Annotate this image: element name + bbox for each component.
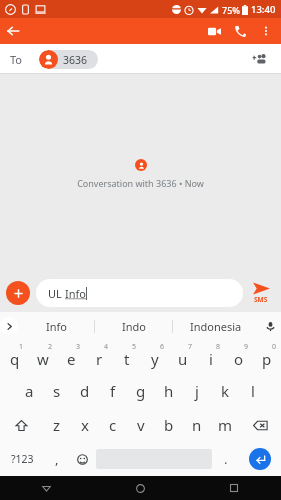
staticText: 5 (132, 342, 137, 352)
button[interactable]: g (127, 374, 155, 408)
button[interactable]: Home (93, 476, 187, 500)
button[interactable]: Indo (95, 312, 172, 340)
button[interactable]: More options (253, 18, 279, 44)
staticText: 75% (222, 4, 240, 16)
button[interactable]: v (127, 408, 155, 442)
staticText: z (53, 415, 61, 435)
button[interactable]: w (29, 340, 57, 374)
button[interactable]: Voice input (259, 314, 281, 338)
button[interactable]: d (71, 374, 99, 408)
button[interactable]: h (155, 374, 183, 408)
staticText: UL (48, 286, 65, 301)
staticText: a (25, 381, 34, 401)
button[interactable]: Add people (247, 47, 271, 71)
button[interactable]: f (99, 374, 127, 408)
staticText: 13:40 (251, 3, 276, 16)
button[interactable]: c (99, 408, 127, 442)
staticText: s (53, 381, 61, 401)
button[interactable]: 3636 (39, 50, 98, 69)
button[interactable]: a (15, 374, 43, 408)
button[interactable]: k (211, 374, 239, 408)
staticText: e (67, 349, 76, 369)
staticText: y (151, 349, 159, 369)
staticText: h (164, 381, 174, 401)
staticText: q (10, 349, 20, 369)
staticText: ?123 (11, 452, 34, 466)
staticText: 7 (188, 342, 193, 352)
button[interactable]: UL (36, 279, 243, 307)
button[interactable]: Send SMS (247, 277, 275, 309)
staticText: 4 (104, 342, 109, 352)
staticText: c (109, 415, 117, 435)
button[interactable]: j (183, 374, 211, 408)
staticText: i (209, 349, 213, 369)
button[interactable]: , (45, 442, 69, 476)
button[interactable]: r (85, 340, 113, 374)
staticText: Info (46, 319, 67, 334)
button[interactable]: y (141, 340, 169, 374)
staticText: k (221, 381, 230, 401)
staticText: , (55, 450, 59, 468)
staticText: t (124, 349, 130, 369)
staticText: 1 (19, 342, 24, 352)
button[interactable]: t (113, 340, 141, 374)
button[interactable]: l (239, 374, 267, 408)
button[interactable]: Enter (239, 442, 281, 476)
button[interactable]: Attach (6, 281, 30, 305)
button[interactable]: Video call (201, 18, 227, 44)
button[interactable]: b (155, 408, 183, 442)
button[interactable]: Back (0, 18, 26, 44)
staticText: 3 (76, 342, 81, 352)
button[interactable]: o (225, 340, 253, 374)
button[interactable]: Recents (187, 476, 281, 500)
button[interactable]: Shift (0, 408, 43, 442)
button[interactable]: u (169, 340, 197, 374)
button[interactable]: Call (227, 18, 253, 44)
staticText: 3636 (63, 53, 88, 67)
button[interactable]: . (212, 442, 239, 476)
staticText: w (37, 349, 49, 369)
staticText: 8 (216, 342, 221, 352)
staticText: m (218, 415, 233, 435)
staticText: 6 (160, 342, 165, 352)
staticText: Indo (122, 319, 146, 334)
button[interactable]: n (183, 408, 211, 442)
staticText: Conversation with 3636 • Now (77, 177, 204, 189)
button[interactable]: e (57, 340, 85, 374)
button[interactable]: z (43, 408, 71, 442)
button[interactable]: i (197, 340, 225, 374)
staticText: o (234, 349, 244, 369)
staticText: j (195, 381, 199, 401)
staticText: d (80, 381, 90, 401)
button[interactable]: ?123 (0, 442, 45, 476)
staticText: v (137, 415, 145, 435)
staticText: f (110, 381, 116, 401)
staticText: . (224, 450, 228, 468)
staticText: SMS (254, 295, 268, 304)
button[interactable]: Emoji (69, 442, 96, 476)
button[interactable]: Expand toolbar (0, 317, 18, 335)
button[interactable]: Backspace (239, 408, 281, 442)
button[interactable]: Back (0, 476, 93, 500)
staticText: Info (65, 286, 86, 301)
button[interactable]: Indonesia (173, 312, 259, 340)
staticText: To (10, 52, 23, 67)
staticText: 2 (48, 342, 53, 352)
staticText: u (178, 349, 188, 369)
staticText: p (262, 349, 272, 369)
staticText: g (136, 381, 146, 401)
staticText: 0 (272, 342, 277, 352)
staticText: Indonesia (190, 319, 242, 334)
staticText: r (96, 349, 103, 369)
button[interactable]: q (0, 340, 29, 374)
button[interactable]: m (211, 408, 239, 442)
staticText: l (251, 381, 255, 401)
staticText: n (192, 415, 202, 435)
button[interactable]: p (253, 340, 281, 374)
button[interactable]: x (71, 408, 99, 442)
staticText: b (164, 415, 174, 435)
button[interactable]: s (43, 374, 71, 408)
staticText: 9 (244, 342, 249, 352)
button[interactable]: Info (18, 312, 94, 340)
